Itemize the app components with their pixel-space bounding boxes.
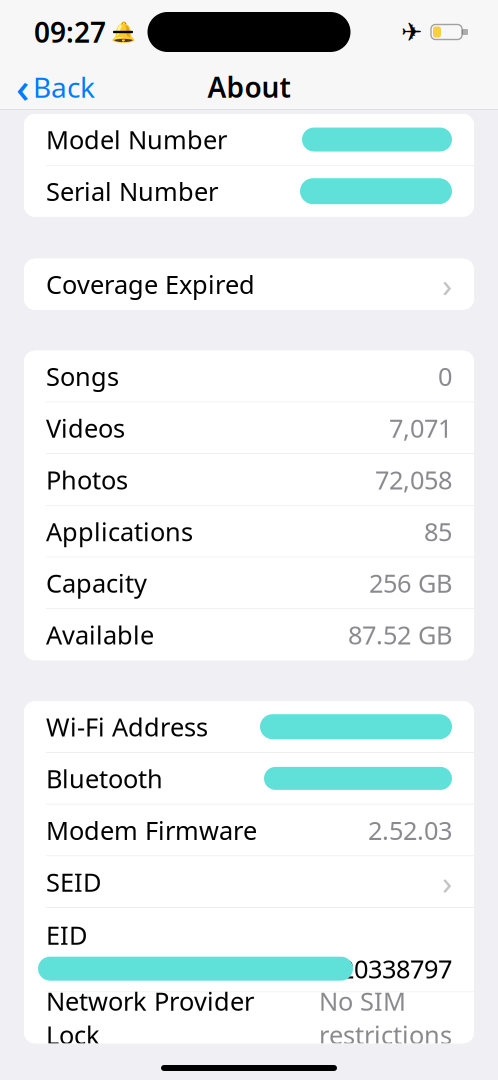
staticText: SEID: [46, 865, 101, 899]
button[interactable]: Coverage Expired: [24, 259, 474, 310]
staticText: 256 GB: [369, 566, 452, 600]
staticText: Applications: [46, 514, 193, 548]
staticText: Bluetooth: [46, 762, 163, 795]
button[interactable]: Applications: [24, 506, 474, 557]
button[interactable]: EID: [24, 908, 474, 992]
staticText: 09:27: [34, 13, 106, 51]
staticText: ›: [442, 860, 452, 904]
staticText: 72,058: [375, 463, 452, 496]
staticText: Serial Number: [46, 174, 218, 208]
staticText: 87.52 GB: [348, 618, 452, 651]
staticText: 0: [438, 359, 452, 393]
staticText: Modem Firmware: [46, 813, 257, 847]
staticText: About: [207, 68, 290, 106]
staticText: 89049032007852018167120338797: [46, 952, 452, 985]
button[interactable]: Wi-Fi Address: [24, 701, 474, 752]
staticText: 85: [424, 514, 452, 548]
staticText: Available: [46, 618, 154, 651]
staticText: 🔔: [110, 21, 135, 43]
staticText: ›: [442, 262, 452, 306]
staticText: Photos: [46, 463, 128, 496]
staticText: 2.52.03: [368, 813, 452, 847]
staticText: Model Number: [46, 123, 227, 156]
button[interactable]: Network Provider Lock: [24, 992, 474, 1043]
button[interactable]: Videos: [24, 402, 474, 453]
button[interactable]: Model Number: [24, 114, 474, 165]
button[interactable]: Serial Number: [24, 166, 474, 217]
button[interactable]: Modem Firmware: [24, 805, 474, 856]
staticText: Capacity: [46, 566, 147, 600]
staticText: Videos: [46, 411, 125, 445]
staticText: Wi-Fi Address: [46, 710, 208, 743]
staticText: Back: [33, 68, 95, 106]
button[interactable]: Capacity: [24, 557, 474, 608]
button[interactable]: Songs: [24, 351, 474, 402]
staticText: No SIM restrictions: [319, 984, 452, 1051]
button[interactable]: Bluetooth: [24, 753, 474, 804]
staticText: ✈: [401, 18, 422, 46]
staticText: Songs: [46, 359, 119, 393]
button[interactable]: SEID: [24, 856, 474, 907]
button[interactable]: Photos: [24, 454, 474, 505]
staticText: Coverage Expired: [46, 267, 255, 301]
staticText: Network Provider Lock: [46, 984, 254, 1051]
staticText: ‹: [16, 60, 29, 114]
button[interactable]: ‹: [0, 64, 111, 110]
button[interactable]: Available: [24, 609, 474, 660]
staticText: EID: [46, 918, 87, 952]
staticText: 7,071: [389, 411, 452, 445]
